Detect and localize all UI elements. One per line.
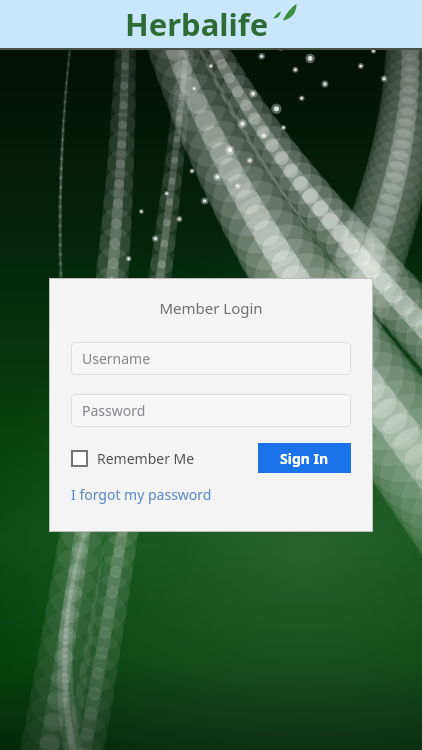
button[interactable]: Sign In bbox=[258, 443, 351, 473]
button[interactable]: Password bbox=[71, 394, 351, 427]
staticText: Remember Me bbox=[97, 449, 195, 468]
button[interactable]: Username bbox=[71, 342, 351, 375]
button[interactable]: Remember Me bbox=[71, 449, 195, 468]
staticText: Password bbox=[82, 401, 146, 420]
staticText: Herbalife bbox=[125, 3, 269, 45]
staticText: Member Login bbox=[49, 298, 373, 318]
button[interactable]: I forgot my password bbox=[71, 485, 212, 504]
staticText: Username bbox=[82, 349, 151, 368]
staticText: I forgot my password bbox=[71, 485, 212, 504]
staticText: Sign In bbox=[280, 449, 329, 468]
